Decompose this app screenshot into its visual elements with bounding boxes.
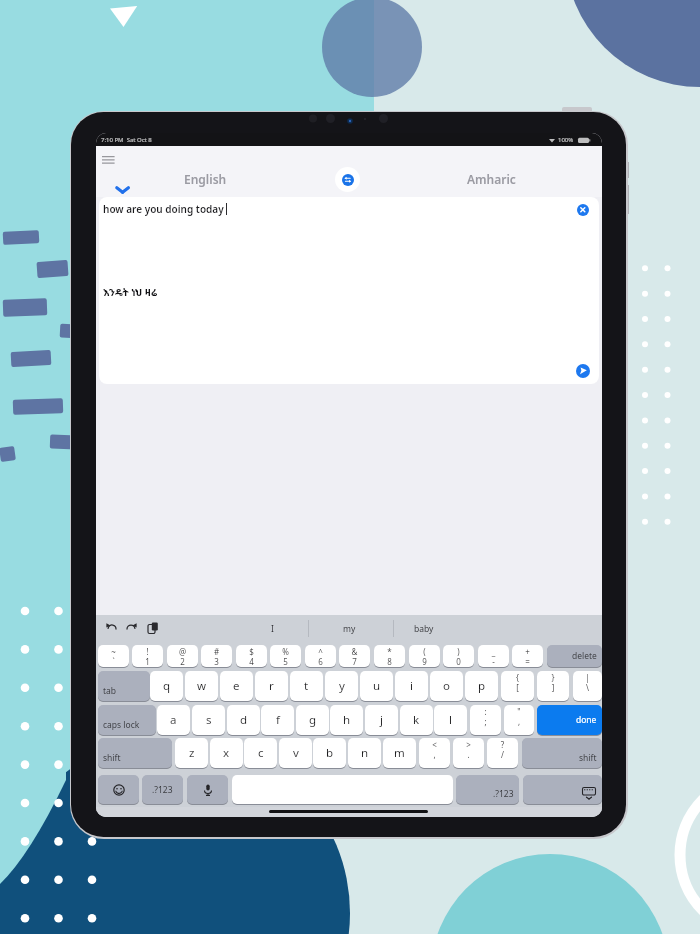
staticText: y: [339, 678, 345, 694]
button[interactable]: .?123: [142, 775, 183, 804]
staticText: b: [326, 745, 334, 761]
button[interactable]: # 3: [201, 645, 232, 667]
button[interactable]: z: [175, 738, 208, 768]
button[interactable]: [232, 775, 453, 804]
button[interactable]: tab: [98, 671, 150, 701]
button[interactable]: _ -: [478, 645, 509, 667]
button[interactable]: j: [365, 705, 398, 735]
button[interactable]: baby: [408, 621, 440, 637]
staticText: o: [443, 678, 450, 694]
button[interactable]: [98, 775, 139, 804]
button[interactable]: ( 9: [409, 645, 440, 667]
staticText: x: [223, 745, 230, 761]
staticText: ? /: [487, 739, 518, 768]
button[interactable]: a: [157, 705, 190, 735]
button[interactable]: Amharic: [431, 169, 551, 189]
button[interactable]: b: [313, 738, 346, 768]
staticText: 7:10 PM Sat Oct 8: [101, 136, 152, 144]
button[interactable]: [335, 167, 360, 192]
button[interactable]: i: [395, 671, 428, 701]
button[interactable]: x: [210, 738, 243, 768]
button[interactable]: [576, 364, 590, 378]
button[interactable]: e: [220, 671, 253, 701]
button[interactable]: u: [360, 671, 393, 701]
staticText: t: [304, 678, 309, 694]
staticText: delete: [572, 650, 597, 662]
button[interactable]: .?123: [456, 775, 519, 804]
button[interactable]: v: [279, 738, 312, 768]
button[interactable]: [187, 775, 228, 804]
staticText: " ,: [504, 706, 534, 735]
staticText: n: [361, 745, 369, 761]
staticText: u: [373, 678, 381, 694]
staticText: g: [309, 712, 317, 728]
button[interactable]: shift: [98, 738, 172, 768]
button[interactable]: % 5: [270, 645, 301, 667]
button[interactable]: * 8: [374, 645, 405, 667]
button[interactable]: delete: [547, 645, 602, 667]
staticText: ( 9: [409, 646, 440, 667]
button[interactable]: r: [255, 671, 288, 701]
button[interactable]: [577, 204, 589, 216]
button[interactable]: [102, 156, 115, 164]
button[interactable]: w: [185, 671, 218, 701]
staticText: m: [394, 745, 405, 761]
button[interactable]: l: [434, 705, 467, 735]
button[interactable]: m: [383, 738, 416, 768]
button[interactable]: | \: [573, 671, 602, 701]
staticText: z: [189, 745, 195, 761]
button[interactable]: y: [325, 671, 358, 701]
button[interactable]: g: [296, 705, 329, 735]
button[interactable]: q: [150, 671, 183, 701]
staticText: .?123: [152, 784, 173, 796]
button[interactable]: caps lock: [98, 705, 156, 735]
button[interactable]: s: [192, 705, 225, 735]
staticText: shift: [103, 752, 121, 764]
button[interactable]: < ,: [419, 738, 450, 768]
staticText: { [: [501, 672, 534, 701]
button[interactable]: > .: [453, 738, 484, 768]
button[interactable]: ^ 6: [305, 645, 336, 667]
staticText: > .: [453, 739, 484, 768]
staticText: I: [271, 623, 274, 635]
button[interactable]: & 7: [339, 645, 370, 667]
button[interactable]: t: [290, 671, 323, 701]
button[interactable]: n: [348, 738, 381, 768]
staticText: < ,: [419, 739, 450, 768]
staticText: Amharic: [467, 171, 516, 187]
button[interactable]: @ 2: [167, 645, 198, 667]
staticText: % 5: [270, 646, 301, 667]
staticText: my: [343, 623, 356, 635]
staticText: ) 0: [443, 646, 474, 667]
button[interactable]: : ;: [470, 705, 501, 735]
button[interactable]: my: [333, 621, 365, 637]
button[interactable]: " ,: [504, 705, 534, 735]
button[interactable]: shift: [522, 738, 602, 768]
button[interactable]: ~ `: [98, 645, 129, 667]
staticText: : ;: [470, 706, 501, 735]
button[interactable]: ? /: [487, 738, 518, 768]
button[interactable]: [523, 775, 602, 804]
button[interactable]: $ 4: [236, 645, 267, 667]
button[interactable]: h: [330, 705, 363, 735]
staticText: q: [163, 678, 171, 694]
button[interactable]: ) 0: [443, 645, 474, 667]
button[interactable]: c: [244, 738, 277, 768]
button[interactable]: o: [430, 671, 463, 701]
staticText: d: [240, 712, 248, 728]
staticText: @ 2: [167, 646, 198, 667]
button[interactable]: p: [465, 671, 498, 701]
staticText: + =: [512, 646, 543, 667]
button[interactable]: k: [400, 705, 433, 735]
button[interactable]: { [: [501, 671, 534, 701]
button[interactable]: d: [227, 705, 260, 735]
button[interactable]: done: [537, 705, 602, 735]
button[interactable]: English: [145, 169, 265, 189]
staticText: ~ `: [98, 646, 129, 667]
button[interactable]: I: [262, 621, 282, 637]
button[interactable]: + =: [512, 645, 543, 667]
staticText: $ 4: [236, 646, 267, 667]
button[interactable]: f: [261, 705, 294, 735]
button[interactable]: ! 1: [132, 645, 163, 667]
button[interactable]: } ]: [537, 671, 569, 701]
